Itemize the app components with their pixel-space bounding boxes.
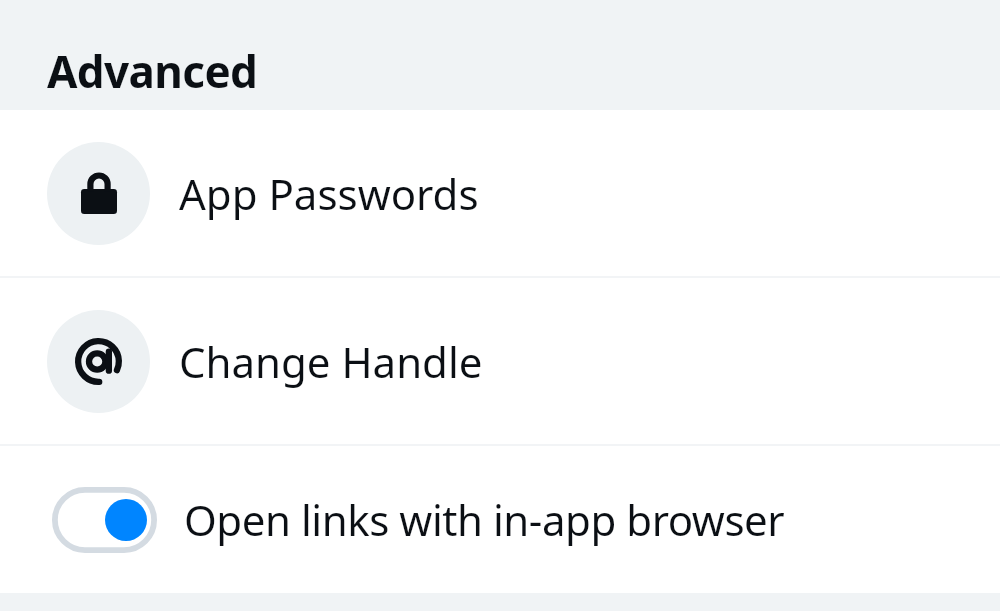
staticText: Open links with in-app browser [184,491,785,548]
button[interactable]: Open links with in-app browser toggle [0,446,1000,593]
button[interactable]: Change Handle [0,278,1000,444]
staticText: Change Handle [179,333,483,390]
staticText: App Passwords [179,165,479,222]
button[interactable]: App Passwords [0,110,1000,276]
button[interactable]: Open links with in-app browser toggle [52,487,157,553]
staticText: Advanced [47,41,258,101]
